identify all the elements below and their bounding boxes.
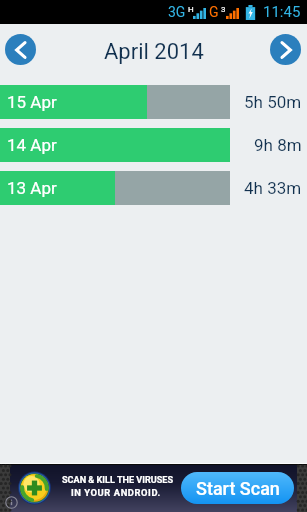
button[interactable]: Start Scan <box>181 472 294 504</box>
staticText: SCAN & KILL THE VIRUSES <box>62 475 174 486</box>
staticText: 5h 50m <box>244 92 302 112</box>
staticText: G <box>209 4 219 20</box>
staticText: April 2014 <box>104 39 204 65</box>
other: Ad information <box>5 496 18 509</box>
staticText: IN YOUR ANDROID. <box>71 487 161 498</box>
button[interactable]: Previous month <box>5 34 36 65</box>
staticText: 13 Apr <box>7 178 57 198</box>
staticText: 3G <box>168 4 186 20</box>
staticText: 14 Apr <box>7 135 57 155</box>
staticText: H <box>188 5 194 14</box>
button[interactable]: 14 Apr <box>0 128 307 162</box>
staticText: 11:45 <box>263 3 301 21</box>
staticText: 15 Apr <box>7 92 57 112</box>
staticText: 9h 8m <box>254 135 302 155</box>
button[interactable]: 15 Apr <box>0 85 307 119</box>
staticText: Start Scan <box>196 478 280 499</box>
button[interactable]: SCAN & KILL THE VIRUSES <box>0 465 307 512</box>
staticText: 3 <box>221 5 226 14</box>
staticText: 4h 33m <box>244 178 302 198</box>
button[interactable]: 13 Apr <box>0 171 307 205</box>
button[interactable]: Next month <box>270 34 301 65</box>
